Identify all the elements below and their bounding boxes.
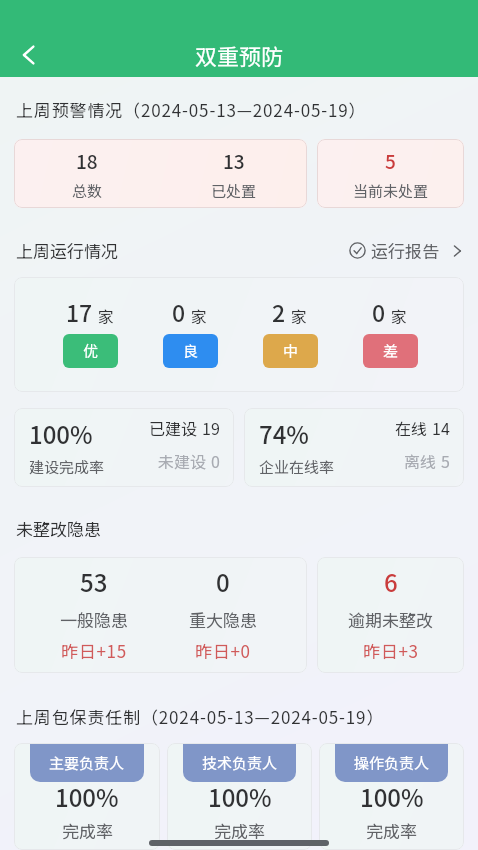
staticText: 14	[432, 416, 450, 439]
staticText: 主要负责人	[49, 752, 125, 774]
staticText: 良	[183, 340, 199, 362]
staticText: 中	[283, 340, 299, 362]
staticText: 操作负责人	[354, 752, 430, 774]
staticText: 家	[291, 304, 308, 327]
staticText: 2	[272, 295, 286, 328]
button[interactable]: 运行报告	[349, 238, 464, 263]
staticText: 总数	[72, 180, 103, 202]
staticText: 0	[372, 295, 386, 328]
staticText: 未整改隐患	[16, 516, 101, 541]
staticText: 差	[383, 340, 399, 362]
button[interactable]: 技术负责人	[183, 743, 296, 782]
button[interactable]: 优	[63, 334, 118, 368]
staticText: 100%	[208, 779, 272, 814]
staticText: 13	[223, 147, 245, 175]
staticText: 当前未处置	[353, 180, 429, 202]
button[interactable]: Back	[7, 33, 51, 77]
staticText: 在线	[395, 416, 428, 439]
button[interactable]: 17	[14, 277, 464, 392]
staticText: 6	[384, 564, 398, 599]
staticText: 优	[83, 340, 99, 362]
staticText: 一般隐患	[60, 607, 128, 632]
button[interactable]: 技术负责人	[167, 743, 312, 850]
staticText: 17	[66, 295, 93, 328]
staticText: 运行报告	[371, 238, 439, 263]
staticText: 100%	[360, 779, 424, 814]
staticText: 19	[202, 416, 220, 439]
staticText: 上周预警情况（2024-05-13—2024-05-19）	[16, 97, 367, 122]
staticText: 5	[441, 449, 450, 472]
button[interactable]: 5	[317, 139, 464, 208]
staticText: 53	[80, 564, 108, 599]
button[interactable]: 6	[317, 557, 464, 673]
staticText: 家	[98, 304, 115, 327]
button[interactable]: 操作负责人	[335, 743, 448, 782]
staticText: 建设完成率	[29, 456, 105, 478]
staticText: 家	[191, 304, 208, 327]
staticText: 100%	[55, 779, 119, 814]
staticText: 昨日+15	[61, 638, 127, 663]
staticText: 74%	[259, 416, 309, 451]
staticText: 技术负责人	[202, 752, 278, 774]
staticText: 昨日+3	[363, 638, 419, 663]
staticText: 离线	[404, 449, 437, 472]
staticText: 0	[211, 449, 220, 472]
staticText: 完成率	[62, 818, 113, 843]
staticText: 5	[385, 147, 396, 175]
staticText: 0	[172, 295, 186, 328]
button[interactable]: 差	[363, 334, 418, 368]
staticText: 双重预防	[195, 39, 284, 71]
staticText: 企业在线率	[259, 456, 335, 478]
button[interactable]: 主要负责人	[14, 743, 160, 850]
staticText: 昨日+0	[195, 638, 251, 663]
button[interactable]: 良	[163, 334, 218, 368]
button[interactable]: 18	[14, 139, 307, 208]
button[interactable]: 主要负责人	[30, 743, 144, 782]
staticText: 未建设	[158, 449, 207, 472]
button[interactable]: 53	[14, 557, 307, 673]
staticText: 完成率	[366, 818, 417, 843]
staticText: 完成率	[214, 818, 265, 843]
staticText: 上周运行情况	[16, 238, 118, 263]
staticText: 已建设	[149, 416, 198, 439]
button[interactable]: 操作负责人	[319, 743, 464, 850]
staticText: 已处置	[211, 180, 257, 202]
staticText: 上周包保责任制（2024-05-13—2024-05-19）	[16, 704, 385, 729]
button[interactable]: 中	[263, 334, 318, 368]
staticText: 18	[76, 147, 98, 175]
button[interactable]: 100%	[14, 408, 234, 487]
staticText: 重大隐患	[189, 607, 257, 632]
staticText: 100%	[29, 416, 93, 451]
staticText: 0	[216, 564, 230, 599]
staticText: 逾期未整改	[348, 607, 433, 632]
staticText: 家	[391, 304, 408, 327]
button[interactable]: 74%	[244, 408, 464, 487]
